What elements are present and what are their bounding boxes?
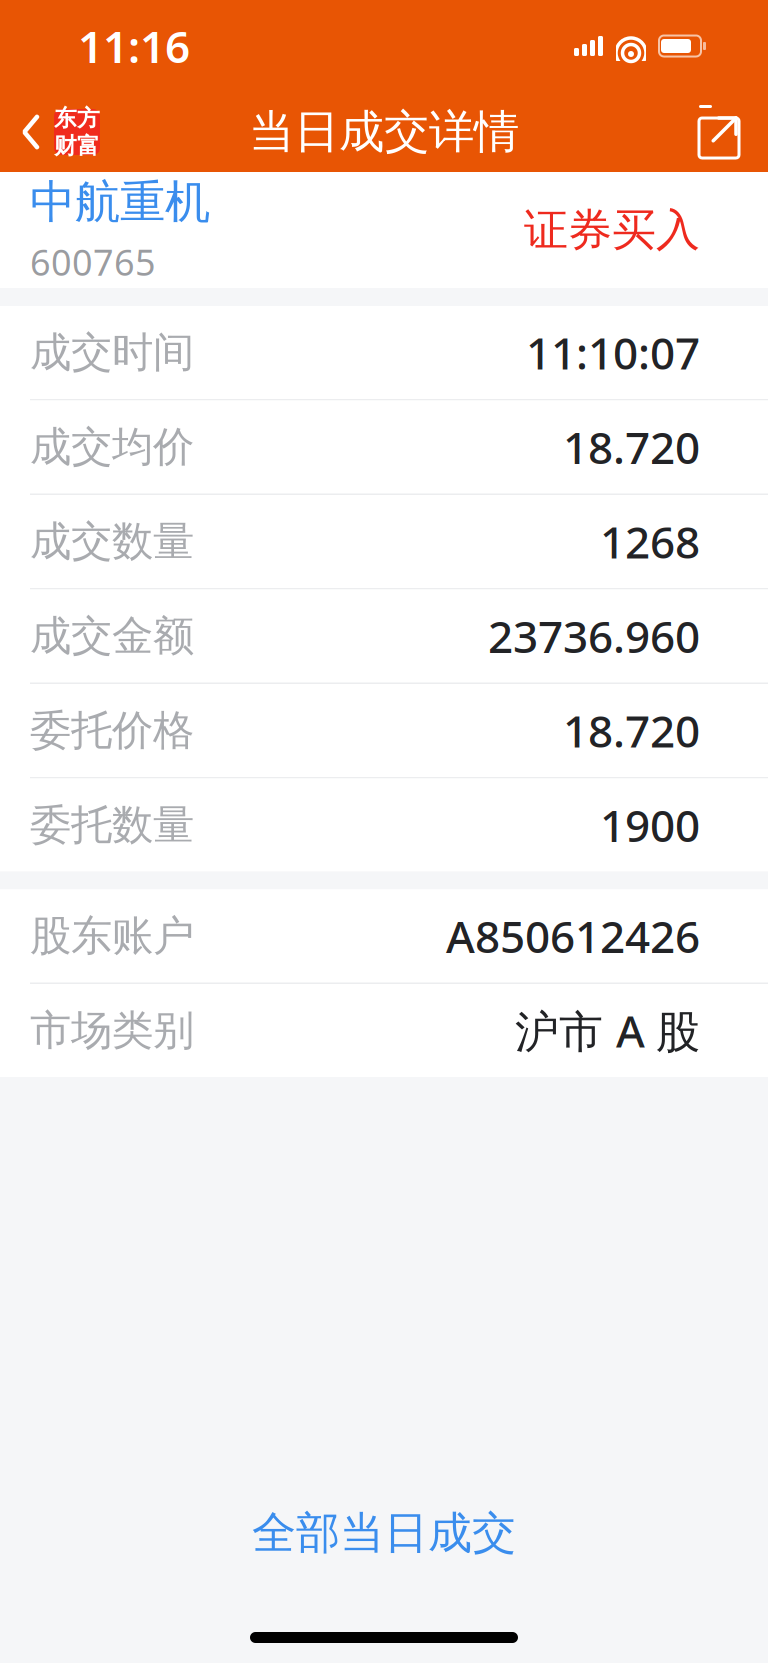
staticText: 18.720	[563, 701, 700, 760]
button[interactable]: 全部当日成交	[0, 1484, 768, 1582]
staticText: 委托价格	[30, 705, 194, 756]
staticText: 成交金额	[30, 611, 194, 661]
staticText: 11:10:07	[526, 323, 700, 382]
staticText: 1268	[600, 512, 700, 571]
staticText: 600765	[30, 238, 156, 286]
staticText: 证券买入	[524, 203, 700, 257]
staticText: 18.720	[563, 418, 700, 476]
staticText: 1900	[600, 796, 700, 854]
staticText: 沪市 A 股	[515, 1001, 700, 1060]
staticText: 股东账户	[30, 911, 194, 961]
staticText: 11:16	[78, 17, 190, 75]
staticText: 成交数量	[30, 516, 194, 567]
staticText: A850612426	[446, 907, 700, 965]
staticText: 成交时间	[30, 327, 194, 378]
staticText: 财富	[54, 132, 100, 160]
button[interactable]: 返回	[0, 97, 100, 167]
staticText: 市场类别	[30, 1005, 194, 1056]
staticText: 23736.960	[488, 607, 700, 665]
staticText: 东方	[54, 104, 100, 132]
staticText: 中航重机	[30, 174, 210, 230]
button[interactable]: 分享	[694, 95, 768, 169]
staticText: 成交均价	[30, 422, 194, 472]
staticText: 委托数量	[30, 800, 194, 850]
staticText: 全部当日成交	[252, 1506, 516, 1560]
staticText: 当日成交详情	[249, 104, 519, 160]
